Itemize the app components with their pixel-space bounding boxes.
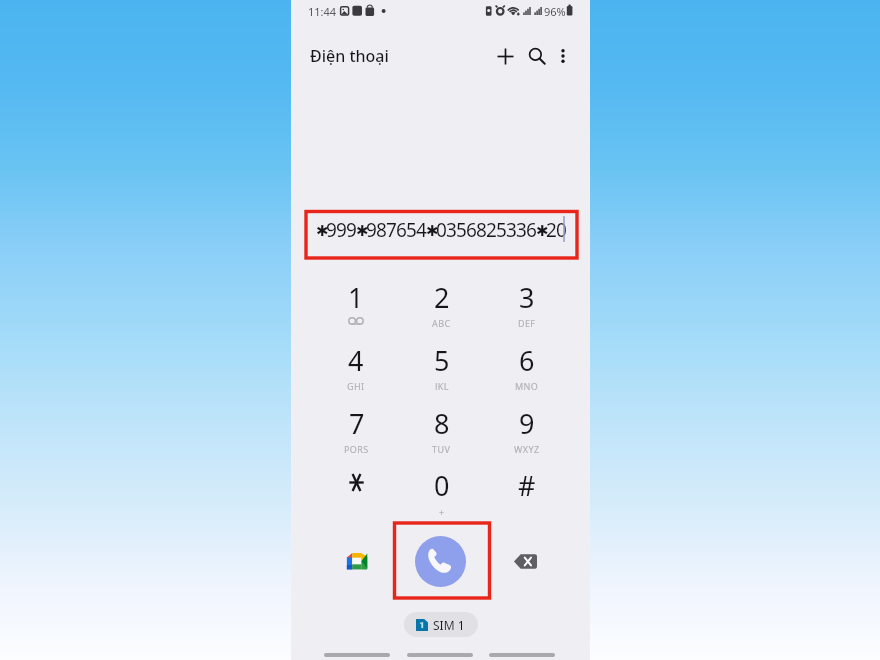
staticText: 6 <box>519 342 535 379</box>
button[interactable]: 7 <box>313 405 399 453</box>
staticText: 5 <box>496 217 506 243</box>
button[interactable]: Video call <box>340 545 372 577</box>
staticText: 9 <box>366 217 376 243</box>
staticText: 8 <box>476 217 486 243</box>
staticText: 3 <box>516 217 526 243</box>
staticText: 5 <box>456 217 466 243</box>
button[interactable]: 2 <box>399 279 484 327</box>
button[interactable]: Navigation <box>489 653 555 657</box>
button[interactable]: 4 <box>313 342 399 390</box>
staticText: 7 <box>349 405 365 442</box>
staticText: 8 <box>434 405 450 442</box>
button[interactable]: 0 <box>399 467 484 515</box>
button[interactable]: SIM 1 <box>404 612 478 637</box>
staticText: 5 <box>434 342 450 379</box>
staticText: WXYZ <box>514 443 540 453</box>
staticText: 96% <box>544 4 566 19</box>
staticText: 9 <box>519 405 535 442</box>
button[interactable]: Navigation <box>407 653 473 657</box>
staticText: 0 <box>556 217 566 243</box>
button[interactable]: # <box>484 467 569 515</box>
staticText: ✱ <box>536 222 546 239</box>
staticText: DEF <box>518 317 536 327</box>
button[interactable]: Add contact <box>489 40 521 72</box>
staticText: 2 <box>546 217 556 243</box>
button[interactable]: More options <box>549 42 577 70</box>
staticText: 0 <box>436 217 446 243</box>
staticText: 2 <box>434 279 450 316</box>
staticText: 3 <box>446 217 456 243</box>
staticText: 1 <box>348 279 364 316</box>
staticText: 9 <box>336 217 346 243</box>
staticText: # <box>518 467 536 504</box>
button[interactable]: 3 <box>484 279 569 327</box>
staticText: GHI <box>347 380 365 390</box>
button[interactable] <box>313 467 399 515</box>
staticText: ✱ <box>356 222 366 239</box>
button[interactable]: 5 <box>399 342 484 390</box>
staticText: ✱ <box>316 222 326 239</box>
staticText: JKL <box>435 380 449 390</box>
staticText: 3 <box>506 217 516 243</box>
staticText: PQRS <box>344 443 369 453</box>
button[interactable]: Backspace <box>509 545 541 577</box>
button[interactable]: Navigation <box>324 653 390 657</box>
button[interactable]: Call <box>415 536 466 587</box>
staticText: 5 <box>406 217 416 243</box>
staticText: + <box>439 506 445 515</box>
staticText: 7 <box>386 217 396 243</box>
staticText: TUV <box>432 443 451 453</box>
staticText: 4 <box>348 342 364 379</box>
button[interactable]: Search <box>521 40 553 72</box>
staticText: 9 <box>326 217 336 243</box>
staticText: 3 <box>519 279 535 316</box>
button[interactable]: 9 <box>484 405 569 453</box>
staticText: 0 <box>434 467 450 504</box>
staticText: 11:44 <box>308 4 337 19</box>
staticText: 6 <box>526 217 536 243</box>
button[interactable]: 8 <box>399 405 484 453</box>
staticText: 6 <box>396 217 406 243</box>
staticText: 6 <box>466 217 476 243</box>
staticText: 2 <box>486 217 496 243</box>
staticText: MNO <box>515 380 539 390</box>
staticText: SIM 1 <box>433 617 465 633</box>
button[interactable]: 6 <box>484 342 569 390</box>
staticText: 9 <box>346 217 356 243</box>
staticText: 4 <box>416 217 426 243</box>
staticText: 8 <box>376 217 386 243</box>
staticText: Điện thoại <box>310 45 389 67</box>
staticText: ABC <box>432 317 451 327</box>
staticText: ✱ <box>426 222 436 239</box>
button[interactable]: 1 <box>313 279 399 327</box>
